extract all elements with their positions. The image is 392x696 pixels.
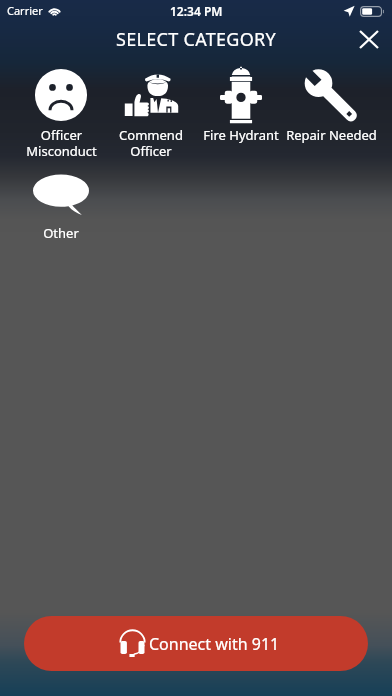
- button[interactable]: Fire Hydrant: [196, 67, 286, 144]
- button[interactable]: Repair Needed: [286, 67, 376, 144]
- staticText: Carrier: [7, 3, 43, 18]
- button[interactable]: Close: [351, 21, 387, 57]
- staticText: Connect with 911: [149, 633, 280, 655]
- button[interactable]: Commend Officer: [106, 67, 196, 159]
- staticText: Fire Hydrant: [203, 126, 279, 144]
- staticText: Officer Misconduct: [26, 126, 97, 159]
- staticText: 12:34 PM: [170, 3, 223, 19]
- staticText: Other: [43, 224, 79, 242]
- staticText: SELECT CATEGORY: [116, 27, 277, 52]
- button[interactable]: Officer Misconduct: [16, 67, 106, 159]
- button[interactable]: Other: [16, 165, 106, 242]
- button[interactable]: Connect with 911: [24, 616, 368, 671]
- staticText: Commend Officer: [119, 126, 183, 159]
- staticText: Repair Needed: [286, 126, 376, 144]
